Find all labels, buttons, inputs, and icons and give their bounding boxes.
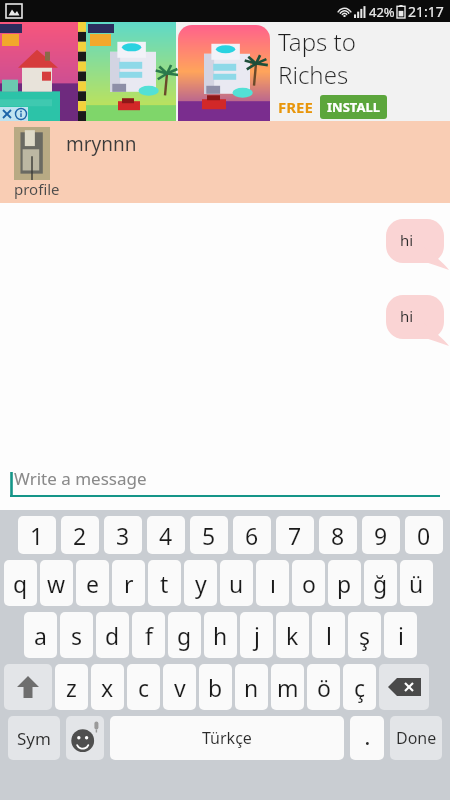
staticText: 2 xyxy=(73,520,87,551)
button[interactable]: ü xyxy=(400,560,433,606)
staticText: hi xyxy=(400,306,414,326)
button[interactable]: l xyxy=(312,612,345,658)
staticText: ç xyxy=(354,672,366,703)
button[interactable]: ç xyxy=(343,664,376,710)
staticText: 8 xyxy=(331,520,345,551)
button[interactable]: v xyxy=(163,664,196,710)
button[interactable]: i xyxy=(384,612,417,658)
button[interactable]: 1 xyxy=(18,516,56,554)
button[interactable]: t xyxy=(148,560,181,606)
button[interactable]: g xyxy=(168,612,201,658)
staticText: n xyxy=(244,672,259,703)
staticText: g xyxy=(177,620,192,651)
button[interactable]: 0 xyxy=(405,516,443,554)
button[interactable]: Shift xyxy=(4,664,52,710)
staticText: FREE xyxy=(278,97,313,117)
staticText: Done xyxy=(396,727,437,749)
button[interactable]: y xyxy=(184,560,217,606)
staticText: i xyxy=(398,620,404,651)
staticText: h xyxy=(213,620,228,651)
button[interactable]: Taps to Riches ad xyxy=(0,22,450,121)
staticText: mrynnn xyxy=(66,131,137,157)
staticText: . xyxy=(365,727,370,750)
staticText: 7 xyxy=(288,520,302,551)
button[interactable]: Write a message xyxy=(0,448,450,510)
button[interactable]: h xyxy=(204,612,237,658)
button[interactable]: m xyxy=(271,664,304,710)
staticText: o xyxy=(302,568,316,599)
staticText: d xyxy=(105,620,120,651)
staticText: Write a message xyxy=(14,467,147,490)
staticText: ğ xyxy=(373,568,388,599)
button[interactable]: c xyxy=(127,664,160,710)
staticText: u xyxy=(229,568,244,599)
button[interactable]: k xyxy=(276,612,309,658)
staticText: a xyxy=(34,620,47,651)
button[interactable]: 3 xyxy=(104,516,142,554)
staticText: s xyxy=(71,620,83,651)
staticText: w xyxy=(47,568,66,599)
button[interactable]: j xyxy=(240,612,273,658)
button[interactable]: . xyxy=(350,716,384,760)
button[interactable]: u xyxy=(220,560,253,606)
staticText: 0 xyxy=(417,520,431,551)
button[interactable]: a xyxy=(24,612,57,658)
button[interactable]: Türkçe xyxy=(110,716,344,760)
staticText: 5 xyxy=(202,520,216,551)
staticText: j xyxy=(254,620,260,651)
staticText: f xyxy=(145,620,153,651)
button[interactable]: z xyxy=(55,664,88,710)
button[interactable]: n xyxy=(235,664,268,710)
button[interactable]: ö xyxy=(307,664,340,710)
staticText: ş xyxy=(359,620,371,651)
button[interactable]: Backspace xyxy=(379,664,429,710)
button[interactable]: d xyxy=(96,612,129,658)
button[interactable]: Done xyxy=(390,716,442,760)
button[interactable]: f xyxy=(132,612,165,658)
button[interactable]: 8 xyxy=(319,516,357,554)
button[interactable]: hi xyxy=(386,295,450,347)
button[interactable]: Ad info xyxy=(14,107,28,121)
button[interactable]: 2 xyxy=(61,516,99,554)
staticText: m xyxy=(277,672,299,703)
button[interactable]: Close ad xyxy=(0,107,14,121)
staticText: z xyxy=(66,672,77,703)
button[interactable]: Sym xyxy=(8,716,60,760)
staticText: y xyxy=(195,568,207,599)
staticText: ü xyxy=(409,568,424,599)
staticText: Taps to xyxy=(278,25,356,58)
button[interactable]: p xyxy=(328,560,361,606)
button[interactable]: 6 xyxy=(233,516,271,554)
button[interactable]: ş xyxy=(348,612,381,658)
button[interactable]: 9 xyxy=(362,516,400,554)
staticText: 4 xyxy=(159,520,173,551)
staticText: 42% xyxy=(369,3,395,21)
button[interactable]: r xyxy=(112,560,145,606)
button[interactable]: s xyxy=(60,612,93,658)
button[interactable]: e xyxy=(76,560,109,606)
button[interactable]: 5 xyxy=(190,516,228,554)
button[interactable]: ı xyxy=(256,560,289,606)
staticText: ı xyxy=(270,568,276,599)
button[interactable]: 4 xyxy=(147,516,185,554)
staticText: b xyxy=(208,672,223,703)
button[interactable]: q xyxy=(4,560,37,606)
button[interactable]: mrynnn xyxy=(0,121,450,203)
staticText: x xyxy=(101,672,114,703)
button[interactable]: ğ xyxy=(364,560,397,606)
button[interactable]: w xyxy=(40,560,73,606)
button[interactable]: INSTALL xyxy=(320,95,387,119)
button[interactable]: Emoji and voice input xyxy=(66,716,104,760)
button[interactable]: 7 xyxy=(276,516,314,554)
button[interactable]: hi xyxy=(386,219,450,271)
staticText: e xyxy=(86,568,99,599)
staticText: 1 xyxy=(30,520,44,551)
staticText: r xyxy=(124,568,134,599)
staticText: v xyxy=(174,672,186,703)
staticText: INSTALL xyxy=(327,98,380,116)
button[interactable]: o xyxy=(292,560,325,606)
button[interactable]: b xyxy=(199,664,232,710)
staticText: 6 xyxy=(245,520,259,551)
button[interactable]: x xyxy=(91,664,124,710)
staticText: k xyxy=(286,620,299,651)
